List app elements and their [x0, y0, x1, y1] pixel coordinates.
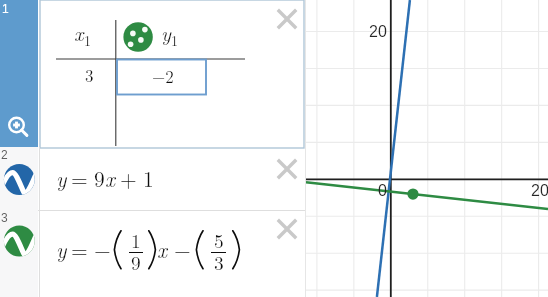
staticText: − — [174, 234, 191, 264]
staticText: 5 — [214, 226, 224, 253]
staticText: 1 — [2, 2, 9, 15]
staticText: 1 — [143, 163, 154, 193]
staticText: x — [74, 18, 84, 47]
button[interactable]: Delete — [274, 216, 300, 242]
staticText: 0 — [378, 182, 387, 200]
button[interactable]: Delete — [274, 156, 300, 182]
staticText: − — [94, 234, 111, 264]
staticText: 9 — [94, 163, 105, 193]
staticText: y — [161, 18, 171, 47]
staticText: = — [71, 163, 88, 193]
staticText: 3 — [214, 248, 224, 275]
staticText: 1 — [171, 30, 178, 50]
staticText: y — [56, 234, 67, 264]
staticText: 1 — [131, 226, 141, 253]
staticText: 20 — [369, 23, 387, 41]
staticText: 3 — [85, 63, 94, 87]
button[interactable]: y — [0, 0, 306, 297]
staticText: + — [120, 163, 137, 193]
button[interactable]: Data table — [40, 0, 304, 148]
staticText: 20 — [531, 182, 548, 200]
staticText: 2 — [1, 148, 8, 161]
staticText: x — [105, 163, 115, 193]
button[interactable]: Expression 2 — [0, 147, 38, 210]
staticText: 3 — [1, 211, 8, 224]
staticText: 9 — [131, 248, 141, 275]
button[interactable]: y — [0, 0, 306, 297]
staticText: 1 — [84, 30, 91, 50]
button[interactable]: Zoom in — [3, 111, 31, 139]
button[interactable]: Expression 3 — [0, 210, 38, 297]
staticText: x — [157, 234, 167, 264]
staticText: y — [56, 163, 67, 193]
button[interactable]: Table 1 — [0, 0, 38, 147]
staticText: = — [71, 234, 88, 264]
button[interactable]: Delete — [274, 6, 300, 32]
staticText: −2 — [152, 64, 174, 88]
